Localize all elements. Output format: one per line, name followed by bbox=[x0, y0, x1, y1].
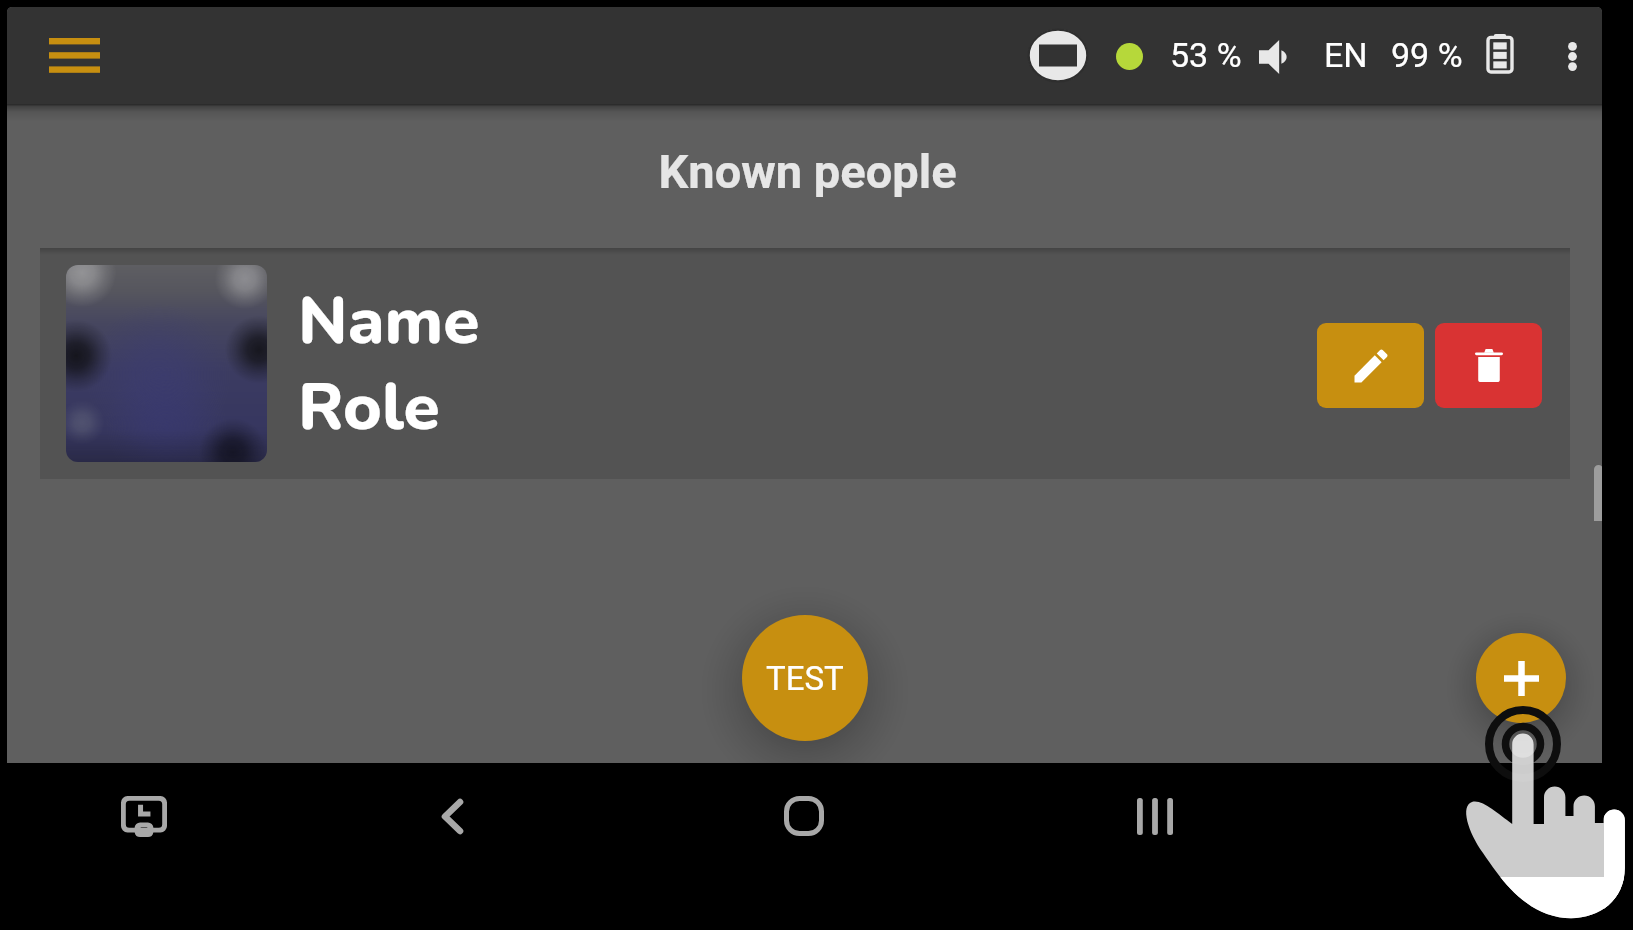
button[interactable]: Name bbox=[40, 248, 1570, 479]
button[interactable]: Recent apps bbox=[1123, 786, 1187, 846]
button[interactable]: Add person bbox=[1476, 633, 1566, 723]
button[interactable]: Back bbox=[420, 786, 484, 846]
staticText: 53 % bbox=[1170, 35, 1242, 75]
button[interactable]: Smart view bbox=[110, 786, 178, 846]
button[interactable]: Edit bbox=[1317, 323, 1424, 408]
button[interactable]: Open navigation menu bbox=[44, 27, 105, 84]
staticText: TEST bbox=[766, 659, 844, 698]
staticText: EN bbox=[1324, 35, 1368, 75]
staticText: Name bbox=[298, 276, 480, 366]
button[interactable]: More options bbox=[1551, 27, 1593, 85]
button[interactable]: TEST bbox=[742, 615, 868, 741]
button[interactable]: Home bbox=[772, 786, 836, 846]
staticText: Known people bbox=[10, 144, 1602, 199]
staticText: Role bbox=[298, 362, 440, 452]
button[interactable]: Delete bbox=[1435, 323, 1542, 408]
staticText: 99 % bbox=[1391, 35, 1463, 75]
